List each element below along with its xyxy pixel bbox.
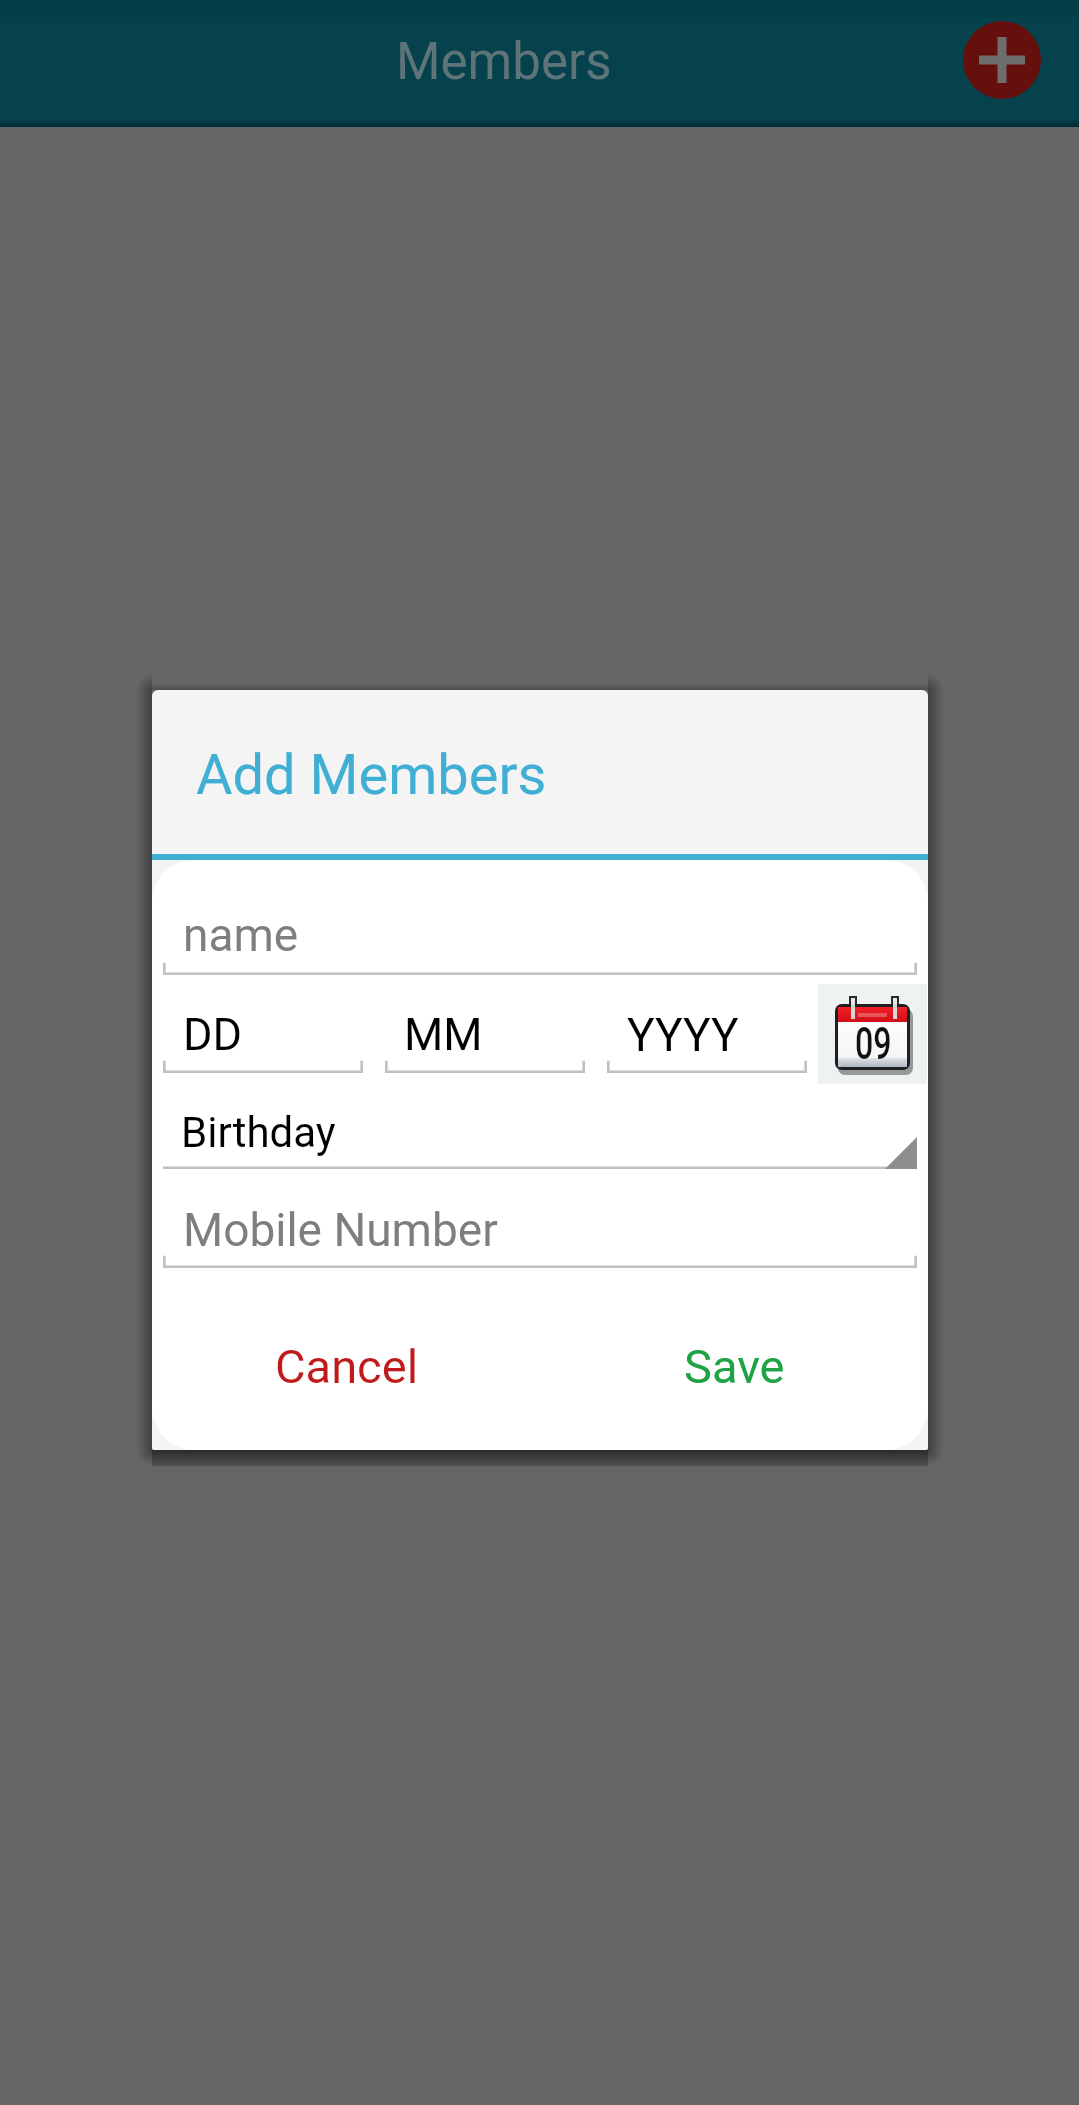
staticText: Birthday [181,1108,336,1157]
button[interactable] [163,1094,917,1168]
staticText: Save [684,1339,785,1394]
staticText: MM [404,1008,483,1061]
button[interactable]: Cancel [250,1320,444,1412]
button[interactable]: Mobile Number [163,1191,917,1269]
staticText: Members [396,32,612,92]
staticText: YYYY [627,1008,739,1062]
staticText: 09 [855,1018,892,1070]
button[interactable]: Add member [963,21,1041,99]
staticText: name [183,908,299,962]
staticText: Cancel [275,1339,419,1394]
staticText: Add Members [196,742,547,808]
button[interactable]: name [163,896,917,976]
button[interactable]: YYYY [607,996,807,1074]
staticText: DD [183,1008,243,1061]
button[interactable]: Save [660,1320,808,1412]
button[interactable]: Pick date [818,984,927,1084]
button[interactable]: MM [385,996,585,1074]
staticText: Mobile Number [183,1203,498,1257]
button[interactable]: DD [163,996,363,1074]
